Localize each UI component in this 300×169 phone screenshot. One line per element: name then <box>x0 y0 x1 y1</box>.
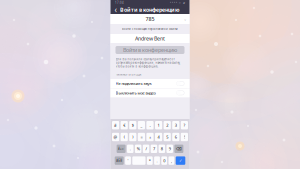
button[interactable]: 4 <box>155 133 162 141</box>
staticText: 9 <box>169 146 171 151</box>
staticText: = <box>140 134 142 140</box>
staticText: 5 <box>166 134 168 140</box>
staticText: Andrew Bent <box>135 35 165 42</box>
button[interactable]: 1 <box>155 121 162 129</box>
button[interactable]: 9 <box>166 145 173 153</box>
button[interactable]: 3 <box>172 121 179 129</box>
staticText: * <box>149 158 151 163</box>
staticText: 8 <box>161 146 163 151</box>
staticText: % <box>137 146 140 151</box>
staticText: 785 <box>145 15 154 23</box>
button[interactable]: Back <box>111 5 120 14</box>
staticText: ⌄ <box>183 17 186 21</box>
staticText: Войти с помощью персональной ссылки <box>122 27 178 31</box>
staticText: ПАРАМЕТРЫ ВХОДА <box>115 73 141 76</box>
staticText: € <box>123 122 125 128</box>
staticText: • • • • ⌾ ▰ <box>170 1 185 4</box>
button[interactable]: ) <box>129 133 136 141</box>
staticText: 17:04 <box>115 1 124 4</box>
staticText: АБВ <box>116 159 122 162</box>
button[interactable]: #+= <box>117 145 126 153</box>
button[interactable]: + <box>146 133 154 141</box>
button[interactable]: ( <box>121 133 128 141</box>
staticText: ‹ <box>114 4 116 15</box>
staticText: ( <box>124 134 125 140</box>
button[interactable]: 5 <box>164 133 171 141</box>
staticText: 7 <box>153 146 155 151</box>
button[interactable]: 8 <box>159 145 165 153</box>
button[interactable]: 0 <box>161 156 167 165</box>
button[interactable]: ? <box>181 121 188 129</box>
staticText: 2 <box>166 122 168 128</box>
staticText: 0 <box>163 158 165 163</box>
staticText: 3 <box>175 122 177 128</box>
button[interactable]: % <box>135 145 141 153</box>
staticText: Если вы получили ссылку-приглашение от о… <box>115 57 180 68</box>
staticText: $ <box>132 122 134 128</box>
staticText: Войти в конференцию <box>120 6 180 13</box>
button[interactable]: # <box>112 121 119 129</box>
button[interactable]: 6 <box>172 133 179 141</box>
button[interactable]: / <box>143 145 149 153</box>
staticText: @ <box>114 134 118 140</box>
staticText: ⌫ <box>176 146 182 151</box>
button[interactable]: ✓ <box>176 156 185 165</box>
staticText: . <box>156 158 157 163</box>
staticText: . <box>130 146 131 151</box>
button[interactable]: 785 <box>110 14 189 24</box>
staticText: # <box>114 122 117 128</box>
button[interactable]: Войти в конференцию <box>115 46 184 54</box>
button[interactable]: ! <box>181 133 188 141</box>
staticText: Войти в конференцию <box>123 46 177 54</box>
button[interactable]: - <box>146 121 154 129</box>
button[interactable]: * <box>147 156 153 165</box>
button[interactable]: 7 <box>151 145 157 153</box>
button[interactable]: , <box>168 156 174 165</box>
button[interactable]: Не подключать звук <box>110 79 189 88</box>
staticText: / <box>146 146 147 151</box>
button[interactable]: ⌫ <box>174 145 183 153</box>
staticText: ) <box>132 134 133 140</box>
button[interactable]: Выключить мое видео <box>110 88 189 97</box>
button[interactable]: 2 <box>164 121 171 129</box>
staticText: + <box>149 134 151 140</box>
staticText: 6 <box>175 134 177 140</box>
button[interactable]: $ <box>129 121 136 129</box>
button[interactable]: = <box>138 133 145 141</box>
button[interactable]: ' <box>125 156 131 165</box>
button[interactable]: @ <box>112 133 119 141</box>
button[interactable]: € <box>121 121 128 129</box>
staticText: , <box>171 158 172 163</box>
button[interactable]: . <box>127 145 133 153</box>
staticText: Не подключать звук <box>115 81 151 86</box>
staticText: 1 <box>158 122 160 128</box>
button[interactable] <box>132 156 145 165</box>
staticText: #+= <box>118 147 124 150</box>
button[interactable]: . <box>154 156 160 165</box>
staticText: Выключить мое видео <box>115 90 155 95</box>
button[interactable]: _ <box>138 121 145 129</box>
staticText: 4 <box>158 134 160 140</box>
staticText: ✓ <box>179 158 182 163</box>
button[interactable]: АБВ <box>115 156 124 165</box>
staticText: ? <box>183 122 185 128</box>
staticText: ! <box>184 134 185 140</box>
staticText: _ <box>140 122 142 128</box>
button[interactable]: Andrew Bent <box>110 34 189 43</box>
